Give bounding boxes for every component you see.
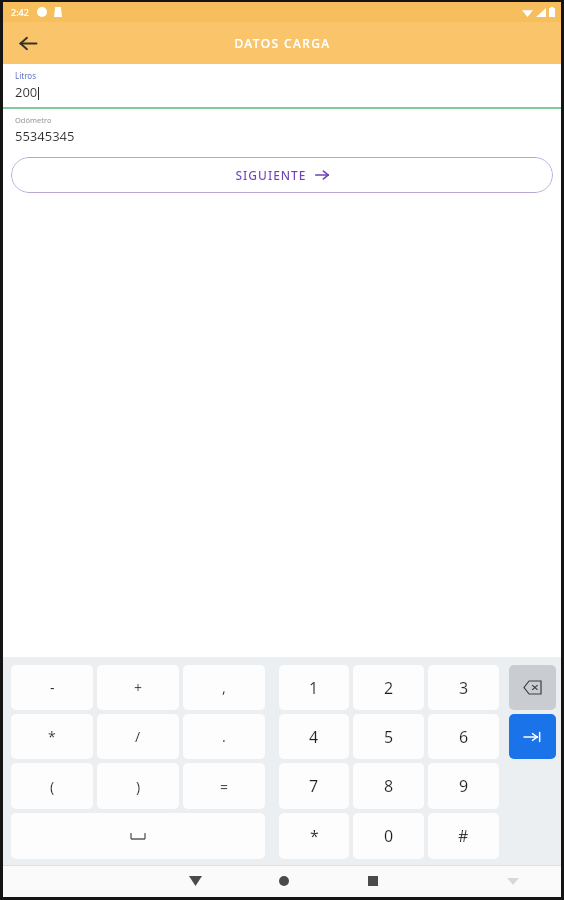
button[interactable]: , — [183, 665, 265, 710]
staticText: # — [458, 825, 469, 847]
staticText: . — [222, 727, 226, 746]
button[interactable]: 4 — [279, 714, 349, 759]
button[interactable]: Back — [11, 26, 45, 60]
button[interactable]: Recents — [349, 865, 397, 897]
staticText: Odómetro — [15, 115, 52, 125]
button[interactable]: Litros — [3, 64, 561, 107]
button[interactable]: Hide keyboard — [171, 865, 219, 897]
button[interactable]: / — [97, 714, 179, 759]
staticText: 2 — [384, 677, 394, 699]
button[interactable]: ( — [11, 763, 93, 809]
button[interactable]: More — [491, 865, 535, 897]
button[interactable]: * — [11, 714, 93, 759]
staticText: 7 — [309, 775, 319, 797]
staticText: 6 — [459, 726, 469, 748]
button[interactable]: + — [97, 665, 179, 710]
button[interactable]: Home — [260, 865, 308, 897]
staticText: 2:42 — [11, 6, 29, 18]
button[interactable]: 3 — [428, 665, 499, 710]
button[interactable]: 1 — [279, 665, 349, 710]
staticText: 9 — [459, 775, 469, 797]
button[interactable]: SIGUIENTE — [11, 157, 553, 193]
button[interactable]: . — [183, 714, 265, 759]
staticText: 4 — [309, 726, 319, 748]
staticText: / — [135, 727, 141, 746]
staticText: ) — [136, 777, 141, 796]
button[interactable]: 5 — [353, 714, 424, 759]
staticText: - — [50, 678, 55, 697]
staticText: 5 — [384, 726, 394, 748]
staticText: ( — [50, 777, 55, 796]
button[interactable]: # — [428, 813, 499, 859]
staticText: Litros — [15, 70, 36, 81]
button[interactable]: 8 — [353, 763, 424, 809]
staticText: * — [48, 727, 56, 746]
button[interactable]: Space — [11, 813, 265, 859]
button[interactable]: Odómetro — [3, 109, 561, 152]
button[interactable]: = — [183, 763, 265, 809]
button[interactable]: Backspace — [509, 665, 556, 710]
staticText: SIGUIENTE — [235, 167, 307, 183]
staticText: 0 — [384, 825, 394, 847]
button[interactable]: 0 — [353, 813, 424, 859]
button[interactable]: Next — [509, 714, 556, 759]
button[interactable]: ) — [97, 763, 179, 809]
staticText: 3 — [459, 677, 469, 699]
button[interactable]: 7 — [279, 763, 349, 809]
staticText: 55345345 — [15, 127, 75, 145]
button[interactable]: 6 — [428, 714, 499, 759]
staticText: , — [222, 678, 226, 697]
staticText: 1 — [309, 677, 319, 699]
staticText: + — [134, 678, 143, 697]
staticText: = — [220, 777, 229, 796]
staticText: * — [310, 825, 319, 847]
button[interactable]: 9 — [428, 763, 499, 809]
staticText: 8 — [384, 775, 394, 797]
staticText: DATOS CARGA — [234, 35, 331, 51]
button[interactable]: * — [279, 813, 349, 859]
staticText: 200 — [15, 83, 38, 101]
button[interactable]: 2 — [353, 665, 424, 710]
button[interactable]: - — [11, 665, 93, 710]
